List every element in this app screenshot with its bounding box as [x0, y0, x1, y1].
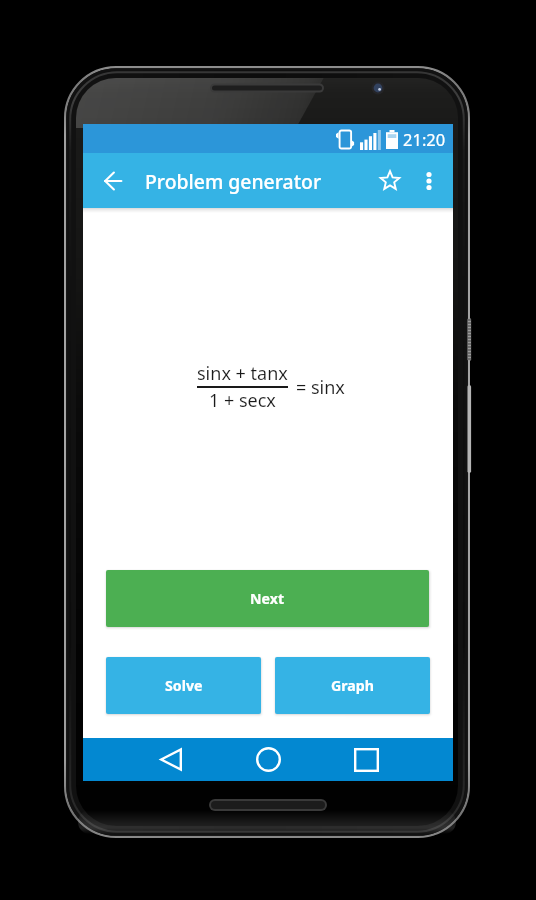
button[interactable]: Graph	[275, 657, 430, 714]
staticText: 1 + secx	[209, 388, 276, 413]
staticText: Problem generator	[145, 168, 322, 194]
button[interactable]: Add to favorites	[367, 158, 413, 204]
button[interactable]: Home	[244, 738, 293, 781]
staticText: Graph	[331, 676, 375, 695]
button[interactable]: Recent apps	[342, 738, 391, 781]
staticText: sinx + tanx	[197, 361, 288, 386]
staticText: 21:20	[403, 128, 446, 150]
button[interactable]: More options	[413, 161, 453, 201]
button[interactable]: Navigate back	[90, 158, 136, 204]
staticText: Solve	[165, 676, 203, 695]
staticText: = sinx	[296, 375, 345, 400]
button[interactable]: Back	[146, 738, 195, 781]
button[interactable]: Solve	[106, 657, 261, 714]
staticText: Next	[250, 589, 285, 608]
button[interactable]: Next	[106, 570, 429, 627]
